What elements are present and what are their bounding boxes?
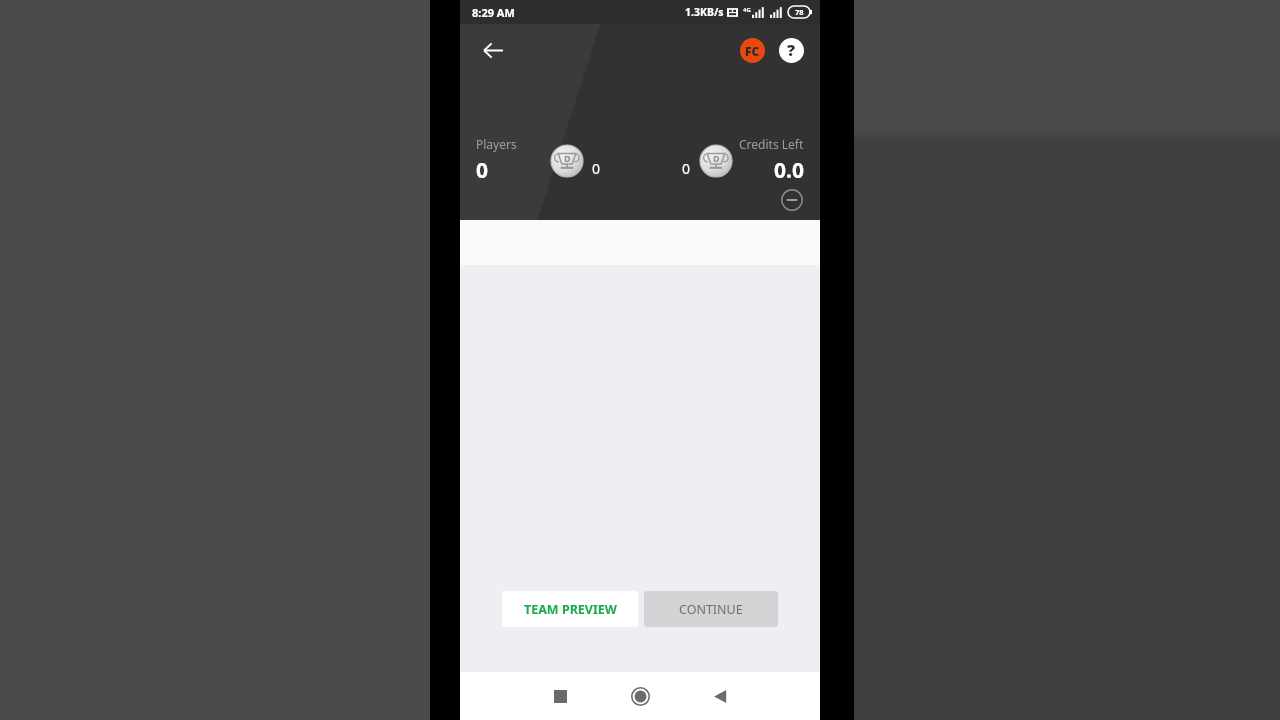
staticText: Players xyxy=(476,136,517,152)
button[interactable]: Fantasy Cricket xyxy=(740,38,765,63)
staticText: 0 xyxy=(592,159,601,178)
staticText: 78 xyxy=(795,7,804,17)
staticText: 0 xyxy=(682,159,691,178)
staticText: 0 xyxy=(476,156,489,185)
staticText: TEAM PREVIEW xyxy=(524,601,617,618)
button[interactable]: Home xyxy=(620,676,660,716)
button[interactable]: Recents xyxy=(540,676,580,716)
staticText: CONTINUE xyxy=(679,601,743,618)
staticText: Credits Left xyxy=(739,136,804,152)
button[interactable]: Help xyxy=(779,38,804,63)
staticText: FC xyxy=(745,43,760,59)
staticText: 4G xyxy=(743,6,751,14)
staticText: 0.0 xyxy=(774,156,804,185)
button[interactable]: CONTINUE xyxy=(644,591,778,627)
button[interactable]: Back xyxy=(700,676,740,716)
staticText: 8:29 AM xyxy=(472,5,515,20)
button[interactable]: Collapse xyxy=(776,184,808,216)
staticText: D xyxy=(713,152,720,164)
staticText: D xyxy=(564,152,571,164)
staticText: ? xyxy=(787,39,796,61)
button[interactable]: TEAM PREVIEW xyxy=(502,591,638,627)
button[interactable]: Back xyxy=(470,28,514,72)
staticText: 1.3KB/s xyxy=(685,5,724,19)
